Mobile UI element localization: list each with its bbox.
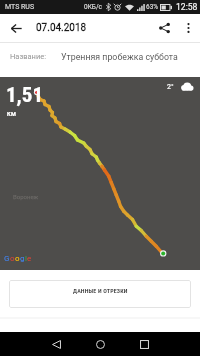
staticText: G [4,254,10,263]
button[interactable]: Back [34,332,78,356]
staticText: MTS RUS [5,3,35,11]
staticText: g [20,254,25,263]
staticText: o [10,254,15,263]
staticText: КМ [7,111,17,117]
button[interactable]: Share [153,14,176,42]
staticText: Название: [10,52,47,61]
staticText: e [27,254,32,263]
staticText: ДАННЫЕ И ОТРЕЗКИ [73,287,128,294]
staticText: 63% [146,3,159,11]
button[interactable]: Home [78,332,122,356]
staticText: 07.04.2018 [36,22,87,34]
staticText: 1,51 [6,83,44,108]
staticText: Воронеж [13,193,39,200]
button[interactable]: ДАННЫЕ И ОТРЕЗКИ [9,280,191,308]
staticText: 2° [167,83,174,91]
button[interactable]: Recent apps [122,332,166,356]
button[interactable]: More options [176,14,200,42]
staticText: 12:58 [176,2,198,12]
staticText: Утренняя пробежка суббота [61,52,178,62]
staticText: l [25,254,27,263]
button[interactable]: Back [0,14,32,42]
staticText: o [15,254,20,263]
button[interactable]: Название: [0,43,200,77]
staticText: 0КБ/c [84,3,103,11]
